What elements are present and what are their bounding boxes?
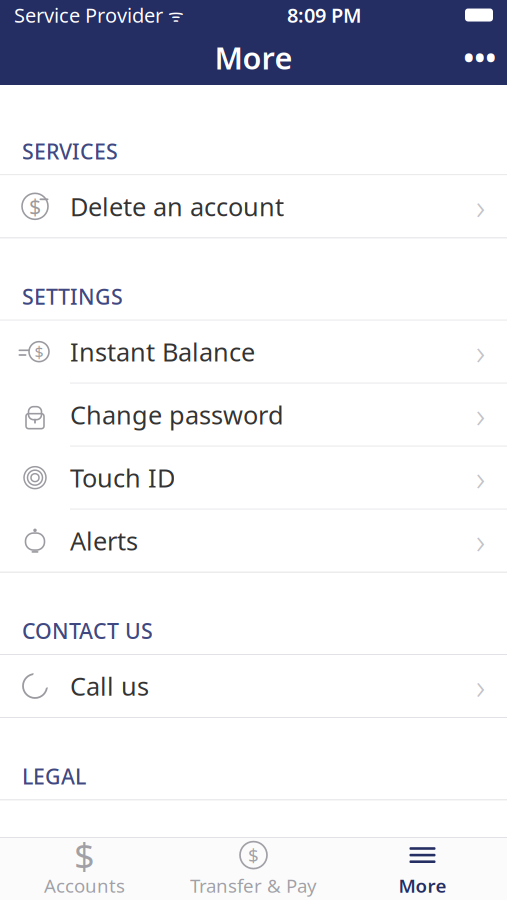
staticText: Transfer & Pay [190,873,317,898]
button[interactable]: More options [453,31,507,83]
staticText: Call us [70,669,149,703]
button[interactable]: Alerts [0,510,507,572]
staticText: › [476,663,485,709]
button[interactable]: $ [169,838,338,900]
staticText: Service Provider [14,2,163,28]
staticText: SERVICES [22,137,118,165]
staticText: More [398,873,446,898]
staticText: Change password [70,398,284,431]
staticText: $ [248,843,259,867]
staticText: Alerts [70,524,138,557]
staticText: Touch ID [70,461,175,494]
staticText: Accounts [44,873,125,898]
staticText: › [476,455,485,501]
staticText: More [214,37,292,78]
staticText: $ [29,192,41,220]
staticText: › [476,183,485,229]
staticText: LEGAL [22,762,86,790]
staticText: CONTACT US [22,617,153,645]
button[interactable]: More [338,838,507,900]
staticText: › [476,329,485,375]
button[interactable]: $ [0,321,507,383]
staticText: $ [34,341,43,362]
button[interactable]: $ [0,175,507,237]
staticText: › [476,392,485,438]
button[interactable]: Call us [0,655,507,717]
button[interactable]: Change password [0,384,507,446]
staticText: ••• [463,39,496,76]
staticText: ᯤ [163,3,184,26]
staticText: SETTINGS [22,282,123,311]
button[interactable]: $ [0,838,169,900]
staticText: Delete an account [70,189,284,223]
staticText: Instant Balance [70,335,255,368]
button[interactable]: Touch ID [0,447,507,509]
staticText: › [476,518,485,564]
staticText: 8:09 PM [287,2,362,28]
staticText: $ [74,831,95,879]
